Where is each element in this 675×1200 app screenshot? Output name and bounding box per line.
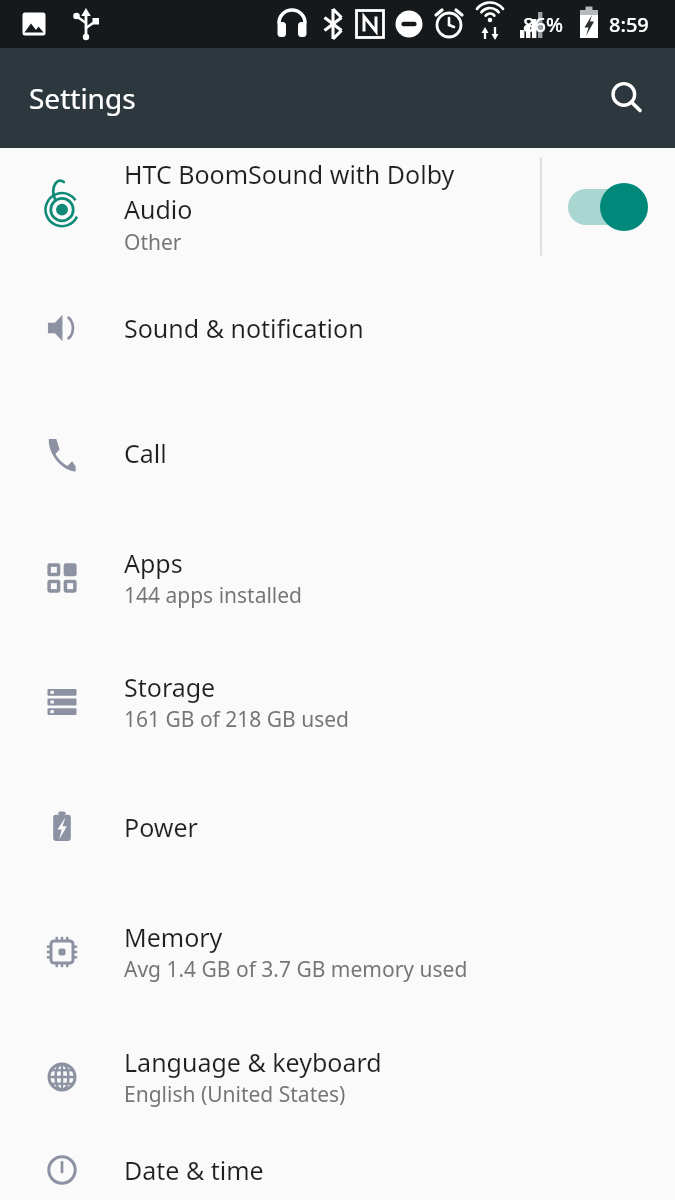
staticText: 8:59 xyxy=(609,11,649,38)
staticText: HTC BoomSound with Dolby Audio xyxy=(124,157,527,227)
button[interactable]: Memory xyxy=(0,889,675,1014)
button[interactable]: Date & time xyxy=(0,1139,675,1200)
staticText: Call xyxy=(124,436,167,470)
staticText: Avg 1.4 GB of 3.7 GB memory used xyxy=(124,955,468,984)
button[interactable]: Apps xyxy=(0,515,675,640)
button[interactable]: Power xyxy=(0,764,675,889)
staticText: 161 GB of 218 GB used xyxy=(124,705,349,734)
button[interactable]: HTC BoomSound with Dolby Audio xyxy=(0,148,675,265)
button[interactable]: HTC BoomSound toggle, on xyxy=(559,180,655,234)
staticText: Language & keyboard xyxy=(124,1045,382,1079)
staticText: Date & time xyxy=(124,1153,264,1187)
staticText: Power xyxy=(124,810,198,844)
button[interactable]: Call xyxy=(0,390,675,515)
staticText: Settings xyxy=(29,79,136,117)
staticText: Storage xyxy=(124,670,216,704)
staticText: Sound & notification xyxy=(124,311,364,345)
button[interactable]: Sound & notification xyxy=(0,265,675,390)
button[interactable]: Language & keyboard xyxy=(0,1014,675,1139)
staticText: Memory xyxy=(124,920,223,954)
staticText: Apps xyxy=(124,546,183,580)
staticText: Other xyxy=(124,228,182,257)
staticText: 86% xyxy=(523,11,563,38)
button[interactable]: Storage xyxy=(0,640,675,764)
staticText: 144 apps installed xyxy=(124,581,303,610)
button[interactable]: Search xyxy=(597,69,655,127)
staticText: English (United States) xyxy=(124,1080,346,1109)
